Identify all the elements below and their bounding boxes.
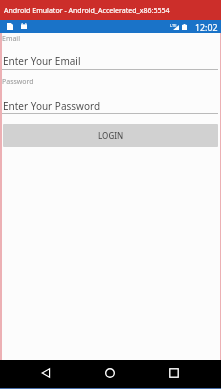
staticText: LTE [170,23,177,28]
staticText: 12:02 [195,22,218,34]
staticText: Enter Your Password [3,99,101,113]
button[interactable]: Email [2,34,218,70]
button[interactable]: Recents [161,360,187,386]
button[interactable]: Back [33,360,59,386]
button[interactable]: Home [97,360,123,386]
staticText: Email [2,34,20,44]
staticText: Enter Your Email [3,54,81,68]
button[interactable]: LOGIN [3,124,218,147]
staticText: Android Emulator - Android_Accelerated_x… [4,5,170,15]
staticText: Password [2,77,34,87]
staticText: LOGIN [98,130,124,141]
button[interactable]: Password [2,77,218,113]
